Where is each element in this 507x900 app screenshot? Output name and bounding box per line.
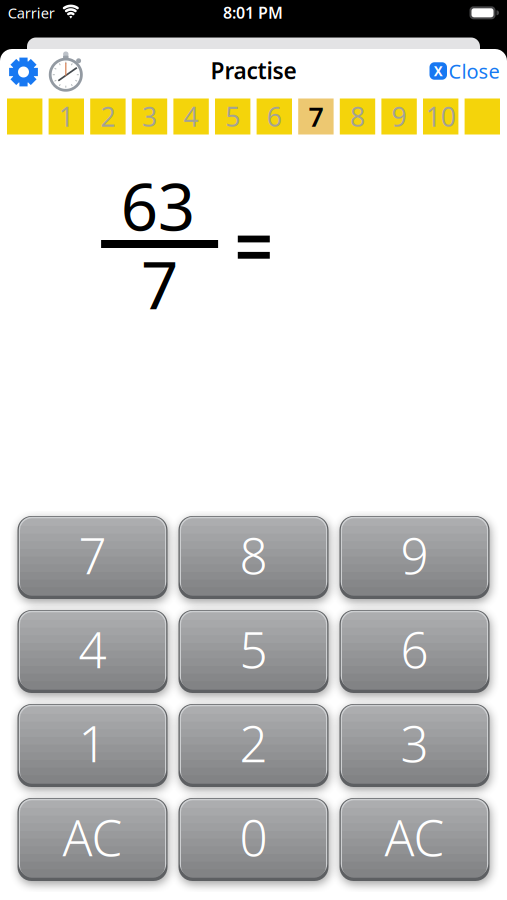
staticText: 2	[100, 99, 115, 134]
staticText: 1	[78, 710, 106, 776]
button[interactable]: 2	[178, 704, 328, 787]
staticText: 3	[400, 710, 428, 776]
staticText: X	[434, 62, 443, 80]
staticText: 10	[426, 99, 456, 134]
button[interactable]: 9	[339, 516, 489, 599]
staticText: Carrier	[8, 3, 55, 22]
staticText: 5	[239, 616, 267, 682]
button[interactable]: 1	[17, 704, 167, 787]
button[interactable]: 6	[339, 610, 489, 693]
staticText: 0	[239, 804, 267, 870]
button[interactable]: 8	[178, 516, 328, 599]
staticText: 2	[239, 710, 267, 776]
staticText: AC	[384, 804, 444, 870]
staticText: Close	[448, 58, 499, 84]
staticText: 8:01 PM	[223, 2, 283, 23]
button[interactable]: AC	[17, 798, 167, 881]
button[interactable]: 4	[17, 610, 167, 693]
staticText: 3	[142, 99, 157, 134]
staticText: 5	[225, 99, 240, 134]
staticText: 6	[267, 99, 282, 134]
staticText: 6	[400, 616, 428, 682]
staticText: 8	[350, 99, 365, 134]
button[interactable]: Close	[429, 58, 499, 84]
staticText: 4	[184, 99, 199, 134]
staticText: 63	[121, 162, 195, 249]
button[interactable]: Timer	[48, 48, 86, 92]
button[interactable]: 7	[17, 516, 167, 599]
staticText: 8	[239, 522, 267, 588]
staticText: 9	[400, 522, 428, 588]
staticText: 7	[308, 99, 323, 134]
staticText: AC	[62, 804, 122, 870]
staticText: Practise	[210, 55, 296, 85]
staticText: 1	[59, 99, 74, 134]
button[interactable]: Settings	[8, 57, 38, 87]
staticText: 7	[78, 522, 106, 588]
staticText: 4	[78, 616, 106, 682]
button[interactable]: 3	[339, 704, 489, 787]
button[interactable]: 5	[178, 610, 328, 693]
button[interactable]: AC	[339, 798, 489, 881]
staticText: 7	[141, 241, 178, 327]
staticText: 9	[392, 99, 407, 134]
button[interactable]: 0	[178, 798, 328, 881]
